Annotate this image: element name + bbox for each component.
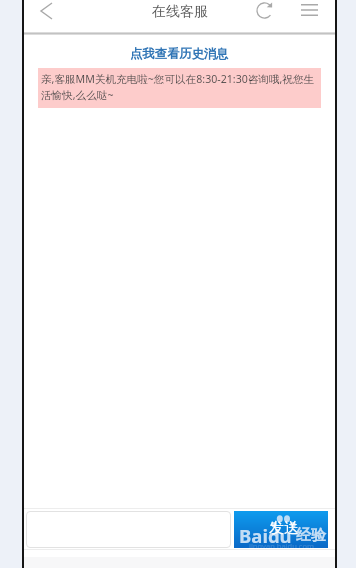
button[interactable]: Menu	[299, 0, 319, 20]
staticText: 亲,客服MM关机充电啦~您可以在8:30-21:30咨询哦,祝您生活愉快,么么哒…	[41, 72, 317, 102]
button[interactable]: Refresh	[254, 0, 274, 20]
staticText: 发送	[269, 519, 299, 538]
staticText: 经验	[296, 526, 326, 545]
button[interactable]: Baidu	[234, 511, 328, 548]
staticText: 在线客服	[152, 3, 208, 21]
staticText: jingyan.baidu.com	[249, 541, 314, 551]
button[interactable]	[26, 511, 231, 548]
button[interactable]: 点我查看历史消息	[24, 46, 335, 61]
staticText: Baidu	[239, 523, 292, 548]
staticText: 点我查看历史消息	[130, 46, 229, 61]
button[interactable]: Back	[32, 0, 60, 25]
